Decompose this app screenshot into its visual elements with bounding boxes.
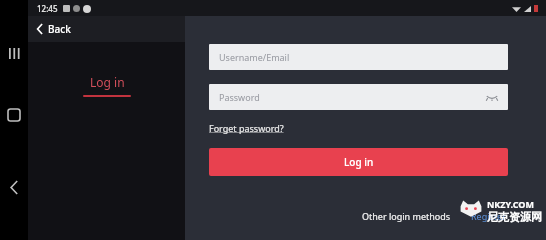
staticText: Log in (344, 155, 374, 169)
staticText: Username/Email (219, 51, 290, 63)
button[interactable]: Register (469, 208, 508, 224)
staticText: 12:45 (37, 3, 58, 14)
staticText: Back (48, 22, 71, 36)
staticText: Password (219, 91, 260, 103)
button[interactable]: Back (33, 18, 75, 40)
button[interactable]: Back (0, 174, 28, 200)
button[interactable]: Username/Email (209, 44, 508, 70)
button[interactable]: Forget password? (209, 121, 284, 135)
staticText: Log in (90, 74, 125, 90)
button[interactable]: Password (209, 84, 508, 110)
staticText: NKZY.COM (487, 198, 534, 210)
button[interactable]: Home (0, 102, 28, 128)
button[interactable]: Log in (209, 148, 508, 176)
button[interactable]: Show password (485, 90, 499, 104)
staticText: 尼克资源网 (487, 210, 542, 224)
button[interactable]: Log in (73, 72, 141, 99)
button[interactable]: Recent apps (0, 40, 28, 66)
button[interactable]: Other login methods (360, 208, 453, 224)
